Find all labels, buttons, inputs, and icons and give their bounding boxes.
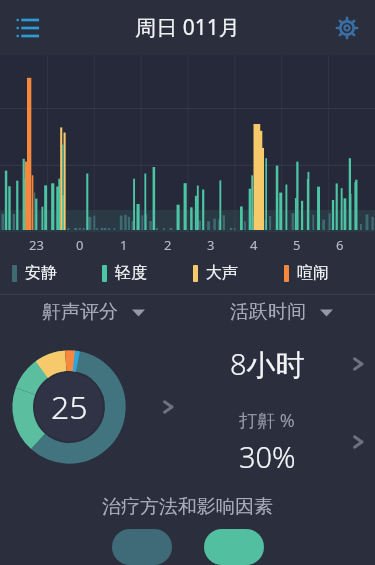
- staticText: 8小时: [230, 344, 305, 384]
- button[interactable]: 鼾声评分: [0, 295, 187, 329]
- staticText: 23: [29, 236, 44, 254]
- staticText: 打鼾 %: [239, 408, 295, 433]
- button[interactable]: 安静: [6, 258, 96, 288]
- staticText: 5: [293, 236, 301, 254]
- staticText: 大声: [206, 263, 238, 283]
- button[interactable]: 8小时: [187, 329, 375, 398]
- staticText: 6: [336, 236, 344, 254]
- staticText: 轻度: [115, 263, 147, 283]
- button[interactable]: 治疗方法和影响因素: [0, 485, 375, 529]
- staticText: 2: [164, 236, 172, 254]
- staticText: 安静: [25, 263, 57, 283]
- button[interactable]: 活跃时间: [187, 295, 375, 329]
- button[interactable]: Treatment option 2: [204, 529, 264, 565]
- button[interactable]: Menu: [6, 6, 50, 50]
- staticText: 喧闹: [297, 263, 329, 283]
- staticText: 4: [250, 236, 258, 254]
- staticText: 25: [51, 385, 88, 429]
- staticText: 0: [76, 236, 84, 254]
- staticText: 治疗方法和影响因素: [102, 495, 273, 519]
- staticText: 周日 011月: [135, 13, 240, 42]
- button[interactable]: 轻度: [96, 258, 187, 288]
- button[interactable]: 25: [0, 329, 187, 485]
- staticText: 30%: [239, 437, 296, 476]
- staticText: 活跃时间: [230, 300, 306, 324]
- staticText: 3: [207, 236, 215, 254]
- button[interactable]: Settings: [325, 6, 369, 50]
- button[interactable]: 大声: [187, 258, 278, 288]
- button[interactable]: 喧闹: [278, 258, 369, 288]
- button[interactable]: 打鼾 %: [187, 398, 375, 485]
- staticText: 鼾声评分: [42, 300, 118, 324]
- staticText: 1: [120, 236, 128, 254]
- button[interactable]: Treatment option 1: [112, 529, 172, 565]
